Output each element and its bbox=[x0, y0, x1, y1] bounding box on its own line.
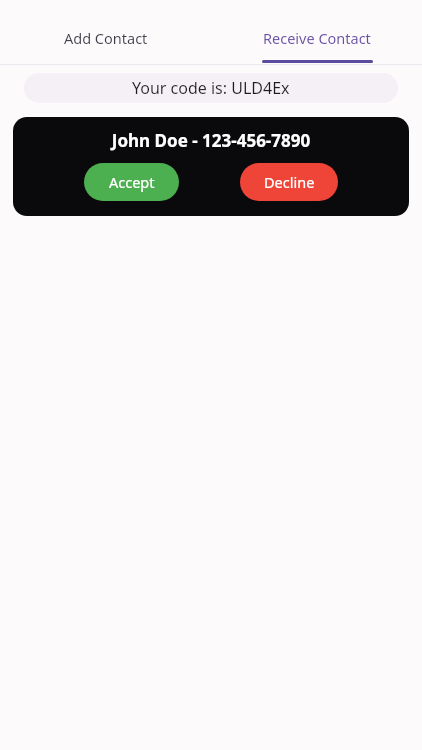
staticText: Your code is: ULD4Ex bbox=[132, 77, 290, 99]
staticText: Accept bbox=[109, 172, 155, 192]
button[interactable]: Add Contact bbox=[0, 12, 211, 64]
button[interactable]: Your code is: ULD4Ex bbox=[24, 73, 398, 103]
staticText: Add Contact bbox=[64, 28, 148, 48]
staticText: Decline bbox=[264, 172, 315, 192]
button[interactable]: Receive Contact bbox=[211, 12, 422, 64]
button[interactable]: Accept bbox=[84, 163, 179, 201]
button[interactable]: Decline bbox=[240, 163, 338, 201]
staticText: John Doe - 123-456-7890 bbox=[13, 129, 409, 152]
staticText: Receive Contact bbox=[263, 28, 371, 48]
